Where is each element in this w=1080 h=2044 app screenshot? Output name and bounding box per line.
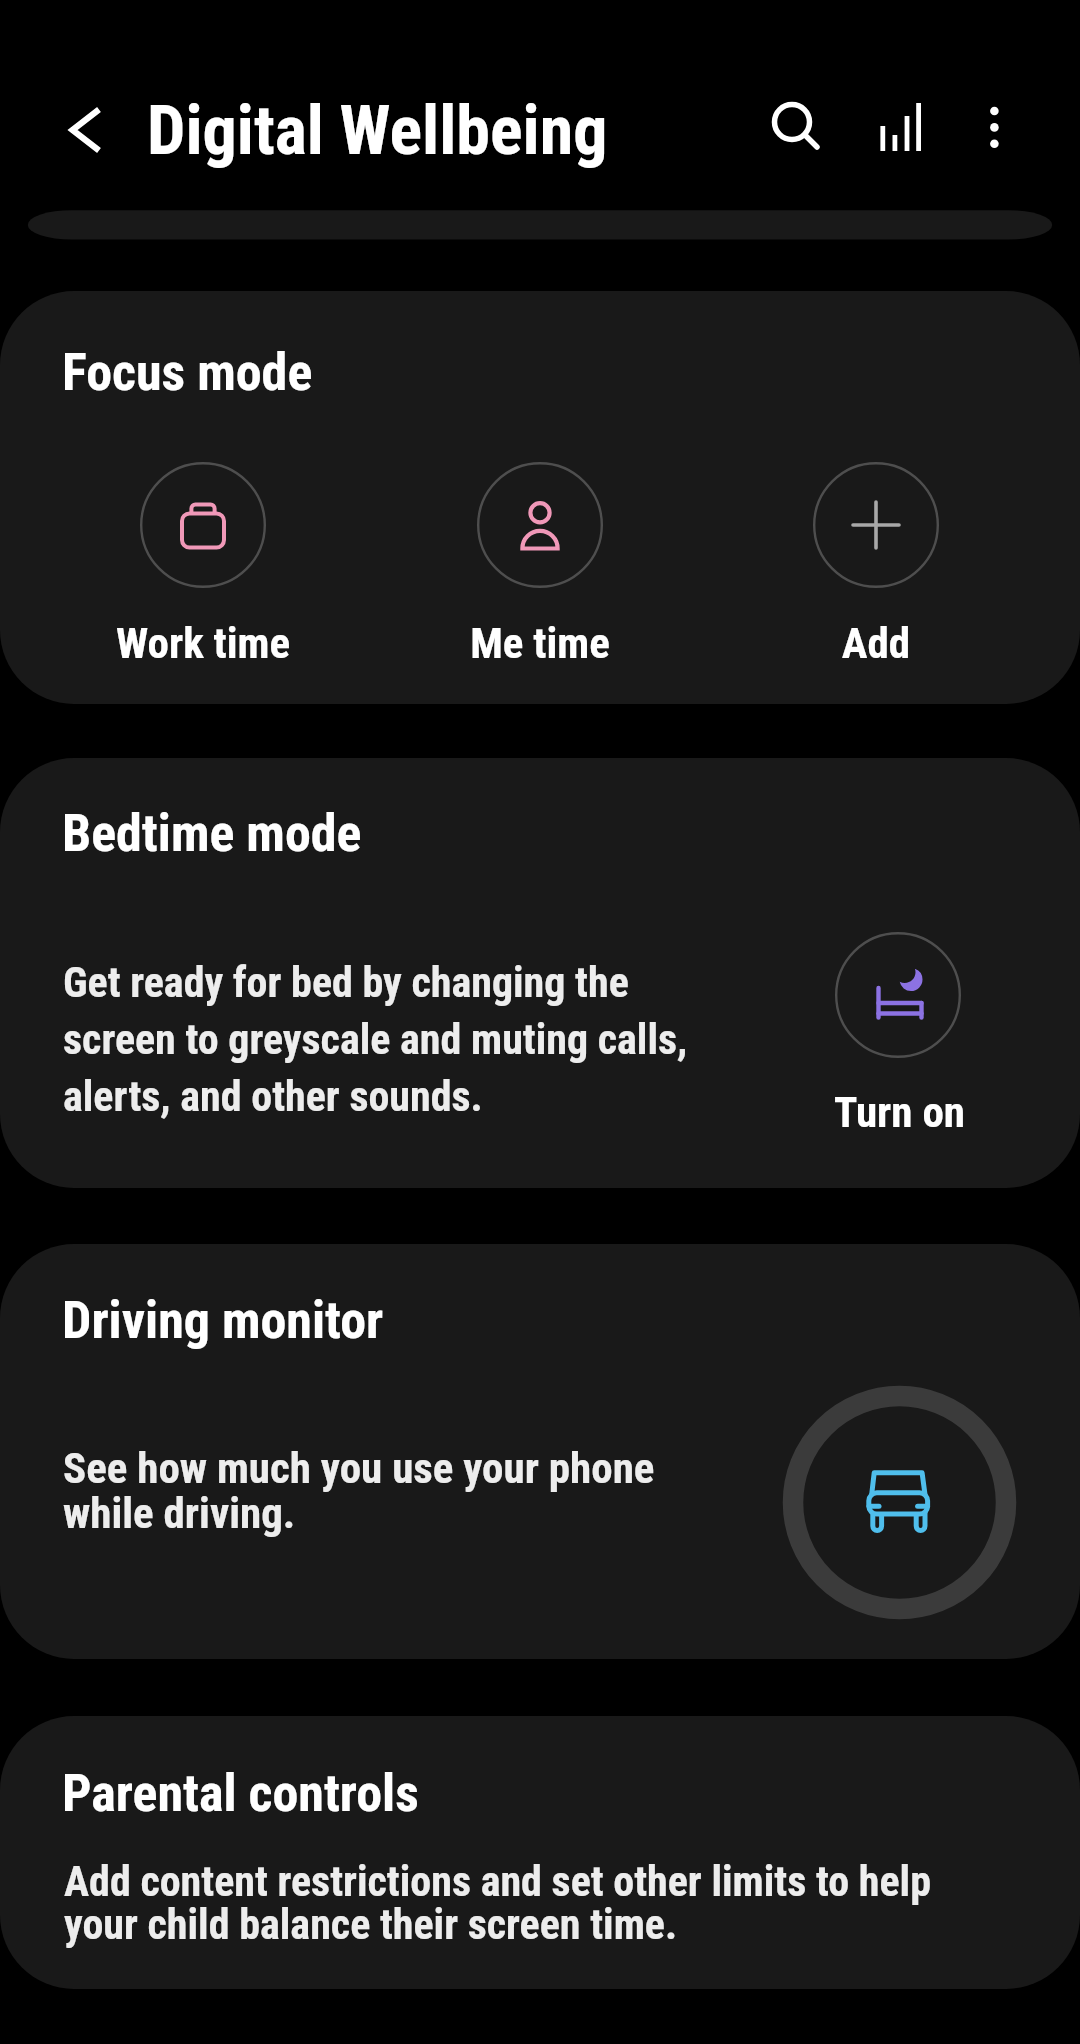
staticText: Focus mode: [62, 342, 313, 403]
button[interactable]: Parental controls: [0, 1716, 1080, 1989]
staticText: Add: [766, 618, 986, 668]
button[interactable]: Driving monitor: [0, 1244, 1080, 1659]
button[interactable]: Search: [752, 82, 832, 162]
staticText: Work time: [93, 618, 313, 668]
button[interactable]: Driving monitor: [782, 1385, 1017, 1620]
button[interactable]: Usage statistics: [860, 90, 940, 170]
staticText: Get ready for bed by changing the screen…: [63, 958, 723, 1121]
button[interactable]: Me time: [430, 462, 650, 657]
staticText: Driving monitor: [62, 1290, 384, 1351]
staticText: Add content restrictions and set other l…: [64, 1857, 974, 1949]
staticText: Bedtime mode: [62, 803, 362, 864]
button[interactable]: Work time: [93, 462, 313, 657]
staticText: Digital Wellbeing: [147, 91, 608, 171]
button[interactable]: Add: [766, 462, 986, 657]
button[interactable]: Navigate up: [50, 90, 130, 170]
staticText: Parental controls: [62, 1763, 419, 1824]
staticText: Me time: [430, 618, 650, 668]
button[interactable]: Screen time summary: [0, 200, 1080, 250]
button[interactable]: More options: [955, 90, 1035, 170]
staticText: See how much you use your phone while dr…: [63, 1443, 708, 1539]
button[interactable]: Turn on bedtime mode: [835, 932, 961, 1058]
staticText: Turn on: [800, 1087, 999, 1137]
button[interactable]: Bedtime mode: [0, 758, 1080, 1188]
